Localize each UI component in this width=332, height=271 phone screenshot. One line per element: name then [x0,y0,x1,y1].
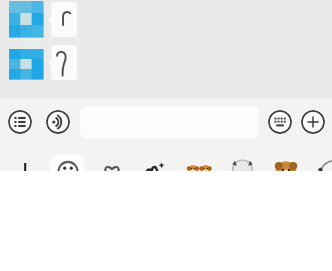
button[interactable] [50,154,84,171]
button[interactable] [47,45,77,80]
button[interactable]: Candidate list [8,110,32,134]
button[interactable]: Keyboard [268,110,292,134]
button[interactable]: Voice input [46,110,70,134]
button[interactable] [9,49,43,79]
button[interactable] [47,2,77,37]
button[interactable]: Add [301,110,325,134]
button[interactable] [9,1,43,37]
